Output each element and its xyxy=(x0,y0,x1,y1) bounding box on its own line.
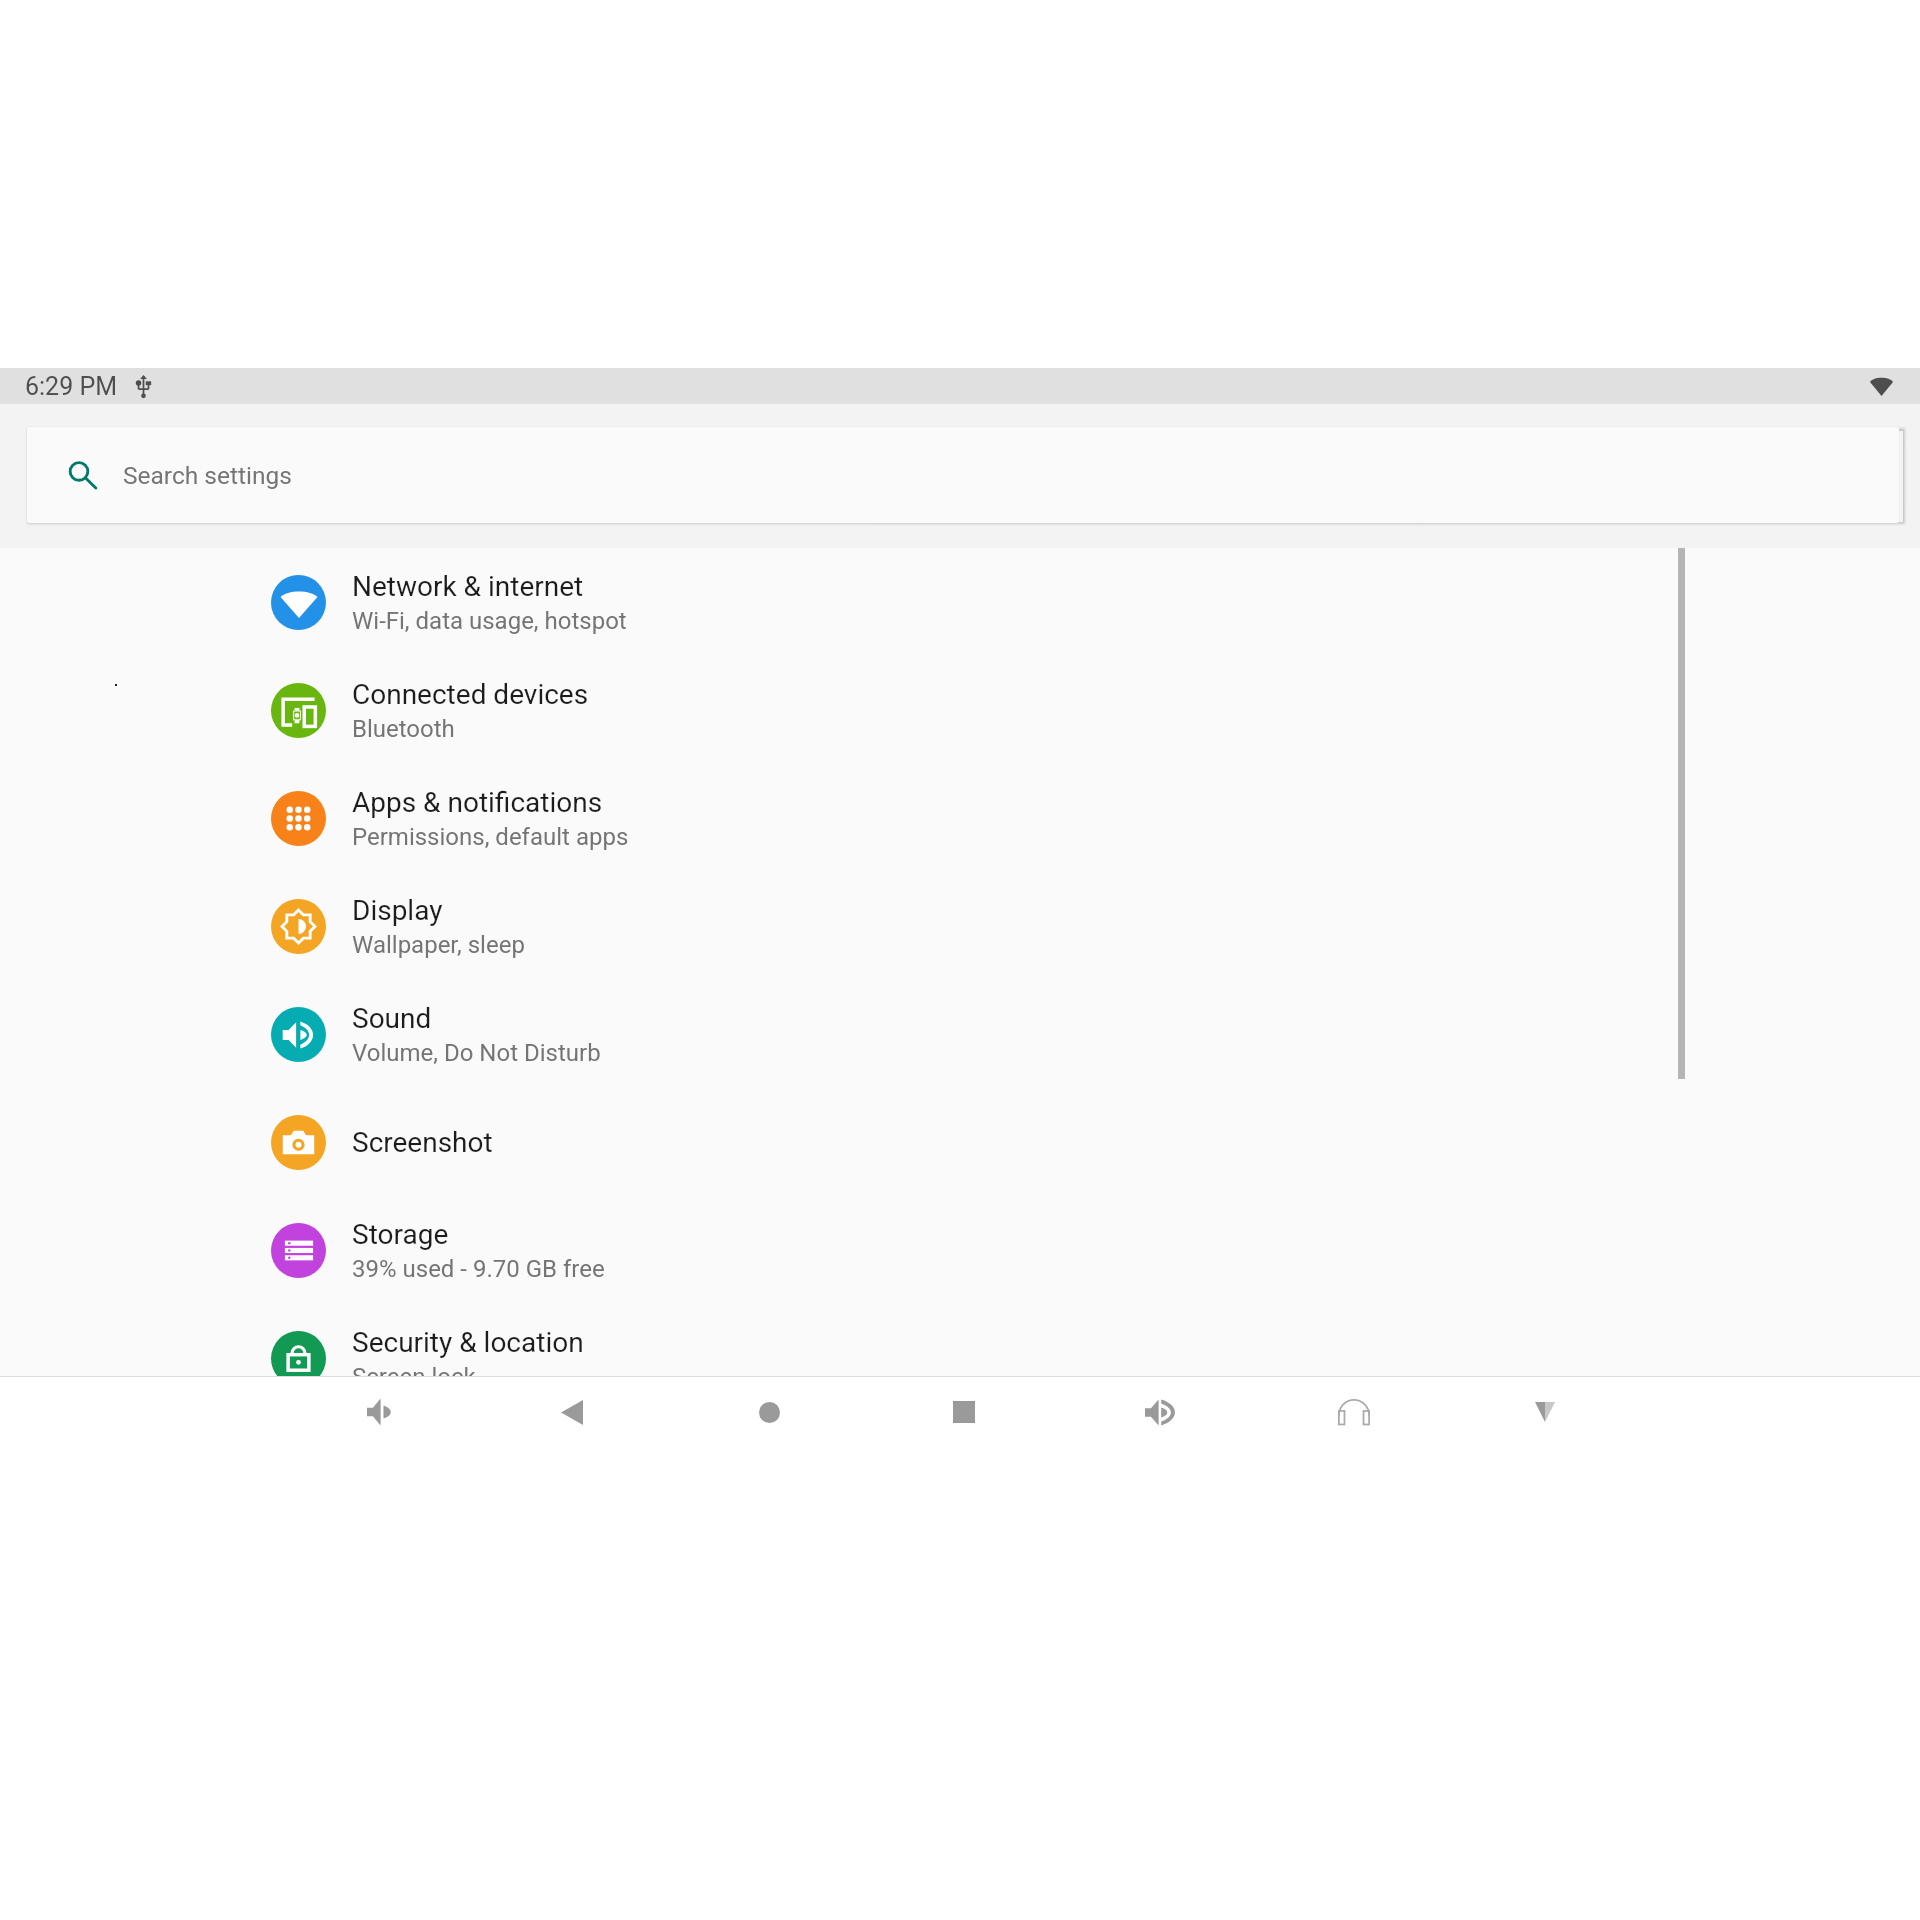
button[interactable]: Search settings xyxy=(27,427,1899,523)
staticText: Apps & notifications xyxy=(352,786,603,819)
button[interactable]: Sound xyxy=(0,980,1920,1088)
staticText: Connected devices xyxy=(352,678,589,711)
staticText: Security & location xyxy=(352,1326,584,1359)
button[interactable]: Security & location xyxy=(0,1304,1920,1376)
staticText: Bluetooth xyxy=(352,715,455,743)
staticText: Wi-Fi, data usage, hotspot xyxy=(352,607,627,635)
staticText: 39% used - 9.70 GB free xyxy=(352,1255,605,1283)
button[interactable]: Display xyxy=(0,872,1920,980)
button[interactable]: Volume down xyxy=(340,1377,418,1447)
staticText: Display xyxy=(352,894,443,927)
button[interactable]: Home xyxy=(730,1377,808,1447)
staticText: Wallpaper, sleep xyxy=(352,931,525,959)
staticText: Network & internet xyxy=(352,570,584,603)
button[interactable]: Recent apps xyxy=(925,1377,1003,1447)
staticText: 6:29 PM xyxy=(25,372,118,401)
button[interactable]: Back xyxy=(533,1377,611,1447)
staticText: Volume, Do Not Disturb xyxy=(352,1039,601,1067)
button[interactable]: Storage xyxy=(0,1196,1920,1304)
staticText: Permissions, default apps xyxy=(352,823,629,851)
button[interactable]: Connected devices xyxy=(0,656,1920,764)
button[interactable]: Headphones xyxy=(1315,1377,1393,1447)
staticText: Screenshot xyxy=(352,1126,493,1159)
button[interactable]: Network & internet xyxy=(0,548,1920,656)
button[interactable]: Screenshot xyxy=(0,1088,1920,1196)
staticText: Screen lock xyxy=(352,1363,476,1376)
button[interactable]: Hide xyxy=(1506,1377,1584,1447)
button[interactable]: Volume up xyxy=(1119,1377,1197,1447)
staticText: Sound xyxy=(352,1002,432,1035)
button[interactable]: Apps & notifications xyxy=(0,764,1920,872)
staticText: Search settings xyxy=(123,461,292,490)
staticText: Storage xyxy=(352,1218,449,1251)
